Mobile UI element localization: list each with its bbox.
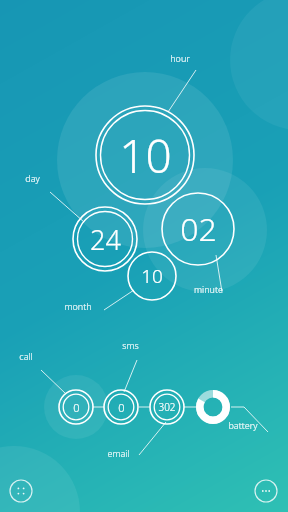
staticText: 0 (118, 400, 125, 415)
button[interactable]: SMS (102, 388, 140, 426)
button[interactable]: Minute 02 (160, 191, 236, 267)
button[interactable]: Battery (194, 388, 232, 426)
staticText: day (25, 172, 40, 184)
staticText: 02 (180, 207, 217, 251)
button[interactable]: Email (148, 388, 186, 426)
staticText: battery (228, 419, 258, 431)
button[interactable]: Day 24 (71, 205, 139, 273)
staticText: hour (170, 52, 190, 64)
button[interactable]: Apps (8, 478, 34, 504)
button[interactable]: Hour 10 (94, 104, 196, 206)
staticText: 0 (73, 400, 80, 415)
button[interactable]: Call (57, 388, 95, 426)
staticText: 10 (141, 263, 163, 289)
staticText: sms (122, 339, 139, 351)
button[interactable]: Month 10 (126, 250, 178, 302)
staticText: month (64, 300, 92, 312)
staticText: call (19, 350, 33, 362)
staticText: email (107, 447, 130, 459)
staticText: minute (194, 283, 223, 295)
staticText: 24 (90, 221, 121, 258)
button[interactable]: More options (253, 478, 279, 504)
staticText: 10 (119, 124, 172, 187)
staticText: 302 (158, 400, 176, 414)
